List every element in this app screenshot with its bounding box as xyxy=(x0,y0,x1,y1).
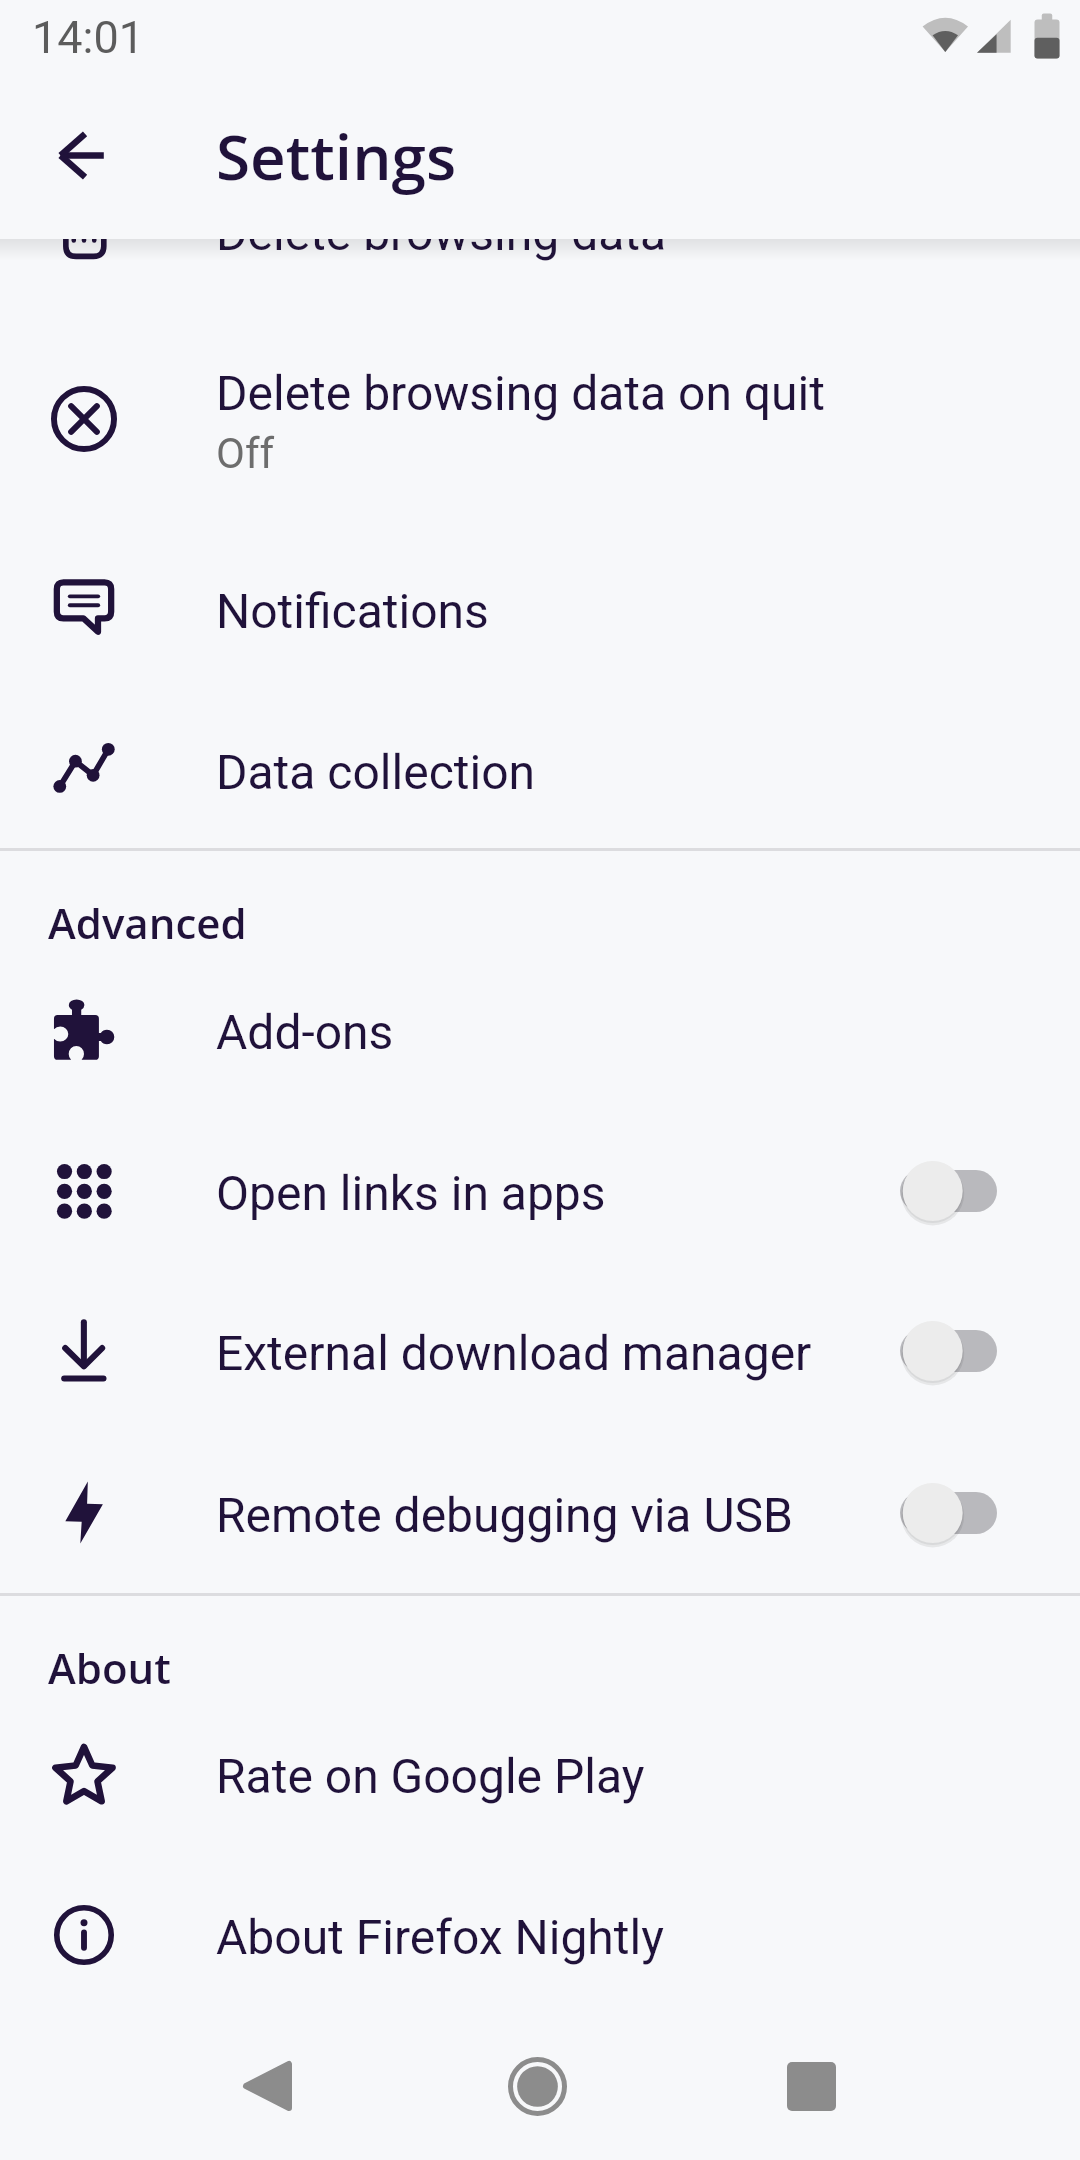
button[interactable]: Data collection xyxy=(0,689,1080,850)
button[interactable]: About Firefox Nightly xyxy=(0,1854,1080,2015)
staticText: About Firefox Nightly xyxy=(216,1909,664,1965)
button[interactable]: Navigate up xyxy=(27,100,137,210)
staticText: Open links in apps xyxy=(216,1165,606,1221)
staticText: Advanced xyxy=(48,894,247,951)
button[interactable]: Open links in apps xyxy=(0,1110,1080,1271)
button[interactable]: Delete browsing data xyxy=(0,150,1080,311)
staticText: Delete browsing data on quit xyxy=(216,365,825,421)
staticText: About xyxy=(48,1639,171,1696)
staticText: Data collection xyxy=(216,744,536,800)
button[interactable]: Rate on Google Play xyxy=(0,1693,1080,1854)
staticText: Notifications xyxy=(216,583,489,639)
staticText: Settings xyxy=(216,114,457,198)
button[interactable]: Back xyxy=(212,2031,322,2141)
staticText: Add-ons xyxy=(216,1004,394,1060)
staticText: Off xyxy=(216,429,275,478)
button[interactable]: Remote debugging via USB xyxy=(0,1432,1080,1593)
button[interactable]: External download manager xyxy=(0,1270,1080,1431)
button[interactable]: Add-ons xyxy=(0,949,1080,1110)
button[interactable]: Home xyxy=(482,2031,592,2141)
button[interactable]: Notifications xyxy=(0,528,1080,689)
staticText: Remote debugging via USB xyxy=(216,1487,793,1543)
staticText: External download manager xyxy=(216,1325,812,1381)
staticText: Delete browsing data xyxy=(216,205,667,261)
staticText: Rate on Google Play xyxy=(216,1748,645,1804)
button[interactable]: Delete browsing data on quit xyxy=(0,338,1080,499)
staticText: 14:01 xyxy=(32,11,145,64)
button[interactable]: Recent apps xyxy=(756,2031,866,2141)
